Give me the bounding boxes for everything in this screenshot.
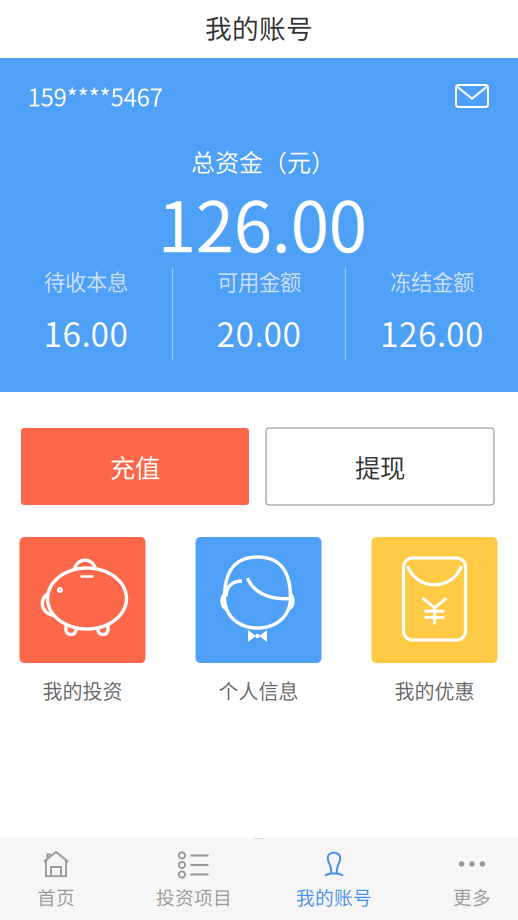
button[interactable]: 首页 — [0, 842, 121, 918]
staticText: 首页 — [37, 883, 75, 910]
staticText: 我的投资 — [42, 676, 122, 705]
staticText: 159****5467 — [27, 79, 162, 113]
staticText: 我的账号 — [296, 883, 372, 910]
staticText: 20.00 — [216, 308, 301, 357]
button[interactable]: 充值 — [21, 428, 249, 505]
button[interactable]: 我的投资 — [19, 537, 145, 705]
button[interactable]: 我的优惠 — [371, 537, 497, 705]
button[interactable]: Messages — [446, 76, 498, 116]
staticText: 投资项目 — [156, 883, 232, 910]
staticText: 个人信息 — [218, 676, 298, 705]
staticText: 总资金（元） — [191, 144, 335, 178]
staticText: 126.00 — [157, 172, 366, 272]
staticText: 126.00 — [380, 308, 484, 357]
staticText: 可用金额 — [217, 265, 301, 296]
staticText: 待收本息 — [44, 265, 128, 296]
staticText: 更多 — [453, 883, 491, 910]
button[interactable]: 投资项目 — [129, 842, 259, 918]
staticText: 冻结金额 — [390, 265, 474, 296]
button[interactable]: 提现 — [266, 428, 494, 505]
staticText: 提现 — [355, 448, 405, 485]
button[interactable]: 个人信息 — [195, 537, 321, 705]
staticText: 我的账号 — [205, 8, 313, 46]
staticText: 我的优惠 — [394, 676, 474, 705]
button[interactable]: 我的账号 — [269, 842, 399, 918]
staticText: 16.00 — [43, 308, 128, 357]
staticText: 充值 — [110, 448, 160, 485]
button[interactable]: 更多 — [407, 842, 518, 918]
